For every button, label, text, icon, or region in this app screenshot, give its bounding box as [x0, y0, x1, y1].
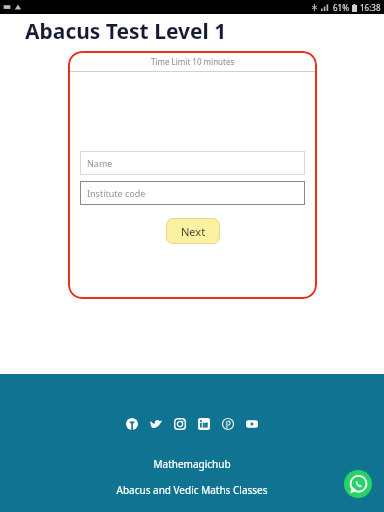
button[interactable]: Name — [80, 151, 305, 175]
button[interactable]: YouTube — [244, 416, 260, 432]
button[interactable]: Mathemagichub — [153, 457, 231, 471]
staticText: Name — [87, 157, 113, 169]
button[interactable]: Next — [166, 218, 220, 244]
button[interactable]: Twitter — [148, 416, 164, 432]
button[interactable]: Abacus and Vedic Maths Classes — [116, 483, 268, 497]
button[interactable]: LinkedIn — [196, 416, 212, 432]
staticText: Time Limit 10 minutes — [151, 56, 235, 67]
button[interactable]: Pinterest — [220, 416, 236, 432]
staticText: Next — [181, 224, 206, 239]
staticText: Abacus Test Level 1 — [25, 17, 227, 46]
staticText: 61% — [333, 2, 349, 13]
button[interactable]: Institute code — [80, 181, 305, 205]
button[interactable]: WhatsApp — [344, 470, 372, 498]
staticText: Abacus and Vedic Maths Classes — [116, 483, 268, 497]
button[interactable]: Facebook — [124, 416, 140, 432]
staticText: 16:38 — [360, 2, 381, 13]
staticText: Institute code — [87, 187, 146, 199]
staticText: Mathemagichub — [153, 457, 231, 471]
button[interactable]: Instagram — [172, 416, 188, 432]
